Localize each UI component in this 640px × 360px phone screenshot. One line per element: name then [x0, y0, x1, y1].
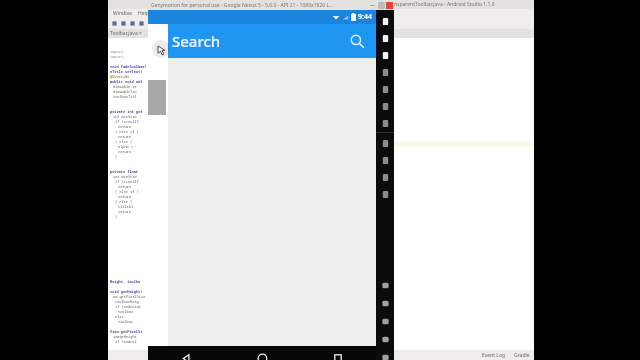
staticText: } else {	[115, 199, 133, 204]
staticText: if (androi	[115, 339, 137, 344]
button[interactable]: Camera	[377, 47, 393, 63]
staticText: } else {	[115, 139, 133, 144]
button[interactable]: Open navigation drawer	[152, 40, 170, 58]
button[interactable]: Battery	[377, 13, 393, 29]
button[interactable]: Upload	[377, 331, 393, 347]
staticText: toolbarHeig	[115, 299, 139, 304]
staticText: void fadeToolbar(	[110, 64, 147, 69]
staticText: import…	[110, 49, 126, 54]
staticText: if (androidx	[115, 304, 141, 309]
button[interactable]: Keyboard	[377, 98, 393, 114]
button[interactable]: Network	[377, 115, 393, 131]
button[interactable]: Power	[377, 349, 393, 360]
staticText: toolbar	[118, 319, 134, 324]
staticText: } else if (	[115, 129, 139, 134]
button[interactable]: Clock	[377, 169, 393, 185]
staticText: drawable.se	[113, 84, 137, 89]
staticText: return	[118, 149, 131, 154]
staticText: ew.getPixelSize	[113, 294, 146, 299]
staticText: return	[118, 124, 131, 129]
button[interactable]: Gradle	[514, 352, 530, 359]
staticText: void getHeight(	[110, 289, 143, 294]
staticText: toolbarTitl	[113, 94, 137, 99]
button[interactable]: Back	[148, 346, 224, 360]
staticText: if (scrollY	[115, 119, 139, 124]
button[interactable]: Help	[138, 10, 149, 17]
staticText: return	[118, 184, 131, 189]
button[interactable]: Screenshot	[377, 313, 393, 329]
staticText: else	[115, 314, 124, 319]
staticText: View.getPixelSi	[110, 329, 143, 334]
staticText: } else if (	[115, 189, 139, 194]
button[interactable]: GPS	[377, 30, 393, 46]
button[interactable]: Display	[377, 64, 393, 80]
button[interactable]: Rotate	[377, 277, 393, 293]
staticText: import…	[110, 54, 126, 59]
button[interactable]: Clipboard	[377, 295, 393, 311]
button[interactable]: Search	[346, 30, 368, 52]
button[interactable]: Toolbar action 4	[138, 20, 145, 27]
button[interactable]: Recents	[300, 346, 376, 360]
staticText: drawableToo	[113, 89, 137, 94]
staticText: Toolbar.java ×	[110, 30, 142, 37]
staticText: return	[118, 134, 131, 139]
staticText: private int get	[110, 109, 143, 114]
button[interactable]: Home	[224, 346, 300, 360]
button[interactable]: Volume up	[377, 135, 393, 151]
staticText: private float	[110, 169, 143, 174]
staticText: if (scrollY	[115, 179, 139, 184]
staticText: imageHeight	[113, 334, 137, 339]
staticText: nTitle.setText(	[110, 69, 143, 74]
button[interactable]: Misc	[377, 186, 393, 202]
staticText: }	[115, 214, 118, 219]
staticText: toolbar	[118, 309, 134, 314]
button[interactable]: Accelerometer	[377, 81, 393, 97]
button[interactable]: Toolbar action 3	[129, 20, 136, 27]
staticText: …\FragmentTransparentToolbar.java - Andr…	[358, 1, 495, 8]
staticText: return	[118, 209, 131, 214]
button[interactable]: Volume down	[377, 152, 393, 168]
staticText: 9:44	[358, 12, 372, 22]
staticText: Search	[172, 31, 221, 51]
staticText: int minScro	[113, 114, 137, 119]
staticText: Genymotion for personal use - Google Nex…	[151, 2, 334, 9]
staticText: public void onS	[110, 79, 143, 84]
staticText: int minScro	[113, 174, 137, 179]
staticText: }	[115, 154, 118, 159]
button[interactable]: Toolbar action 1	[111, 20, 118, 27]
staticText: titleAl	[118, 204, 134, 209]
staticText: alpha =	[118, 144, 134, 149]
button[interactable]: Window	[113, 10, 132, 17]
staticText: @Override	[110, 74, 130, 79]
staticText: Height, toolba	[110, 279, 141, 284]
button[interactable]: —	[370, 2, 376, 9]
button[interactable]: Toolbar action 2	[120, 20, 127, 27]
staticText: return	[118, 194, 131, 199]
button[interactable]: Event Log	[482, 352, 506, 359]
